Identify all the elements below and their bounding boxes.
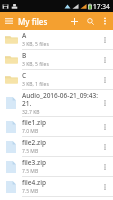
staticText: 3 KB, 1 files — [22, 81, 49, 88]
staticText: 17:34 — [93, 2, 110, 11]
staticText: 32.7 KB — [22, 109, 40, 116]
button[interactable]: A — [0, 30, 113, 49]
staticText: 3 KB, 5 files — [22, 61, 49, 68]
staticText: file1.zip — [22, 118, 46, 127]
staticText: A — [22, 31, 27, 40]
button[interactable]: Item options — [99, 50, 111, 69]
button[interactable]: Search — [82, 13, 98, 29]
button[interactable]: file2.zip — [0, 137, 113, 156]
button[interactable]: Audio_2016-06-21_09:43:21. 51h.3gpp — [0, 90, 113, 116]
staticText: file2.zip — [22, 138, 46, 147]
button[interactable]: Item options — [99, 90, 111, 116]
button[interactable]: Item options — [99, 177, 111, 196]
button[interactable]: Item options — [99, 157, 111, 176]
button[interactable]: C — [0, 70, 113, 89]
staticText: Audio_2016-06-21_09:43:21. 51h.3gpp — [22, 91, 99, 108]
button[interactable]: Add — [66, 13, 82, 29]
button[interactable]: More options — [98, 14, 112, 28]
button[interactable]: file1.zip — [0, 117, 113, 136]
button[interactable]: Item options — [99, 30, 111, 49]
staticText: 3 KB, 5 files — [22, 41, 49, 48]
button[interactable]: B — [0, 50, 113, 69]
staticText: B — [22, 51, 27, 60]
staticText: file3.zip — [22, 158, 46, 167]
button[interactable]: file3.zip — [0, 157, 113, 176]
staticText: 7.5 MB — [22, 188, 39, 195]
staticText: My files — [18, 16, 48, 27]
staticText: 7.0 MB — [22, 128, 39, 135]
staticText: file4.zip — [22, 178, 46, 187]
staticText: 7.5 MB — [22, 168, 39, 175]
staticText: 7.5 MB — [22, 148, 39, 155]
button[interactable]: Open navigation menu — [0, 12, 18, 30]
button[interactable]: Item options — [99, 137, 111, 156]
staticText: C — [22, 71, 27, 80]
button[interactable]: Item options — [99, 117, 111, 136]
button[interactable]: Item options — [99, 70, 111, 89]
button[interactable]: file4.zip — [0, 177, 113, 196]
